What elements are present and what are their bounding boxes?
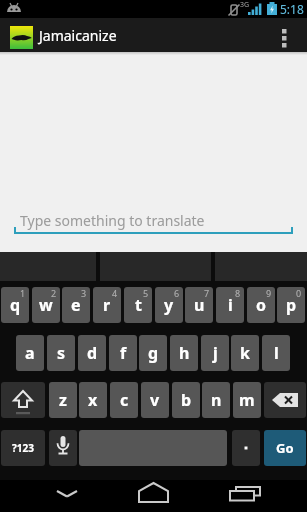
staticText: x	[88, 389, 98, 411]
button[interactable]: p	[277, 287, 305, 323]
staticText: v	[150, 389, 160, 411]
staticText: g	[148, 342, 159, 364]
button[interactable]: n	[202, 382, 230, 418]
staticText: a	[25, 342, 35, 364]
staticText: 3G	[240, 0, 250, 10]
staticText: 6	[174, 287, 180, 299]
button[interactable]: i	[216, 287, 244, 323]
button[interactable]: Go	[264, 430, 306, 466]
button[interactable]: e	[62, 287, 90, 323]
staticText: o	[256, 294, 267, 316]
staticText: j	[213, 342, 218, 364]
staticText: ?123	[12, 441, 34, 455]
button[interactable]: w	[32, 287, 60, 323]
button[interactable]: r	[93, 287, 121, 323]
staticText: 0	[296, 287, 302, 299]
staticText: d	[87, 342, 98, 364]
staticText: k	[240, 342, 250, 364]
button[interactable]: a	[16, 335, 44, 371]
button[interactable]: f	[109, 335, 137, 371]
staticText: 3	[81, 287, 87, 299]
staticText: w	[39, 294, 53, 316]
button[interactable]	[264, 382, 306, 418]
button[interactable]	[222, 480, 268, 512]
button[interactable]	[44, 480, 90, 512]
button[interactable]	[232, 430, 260, 466]
staticText: 7	[204, 287, 210, 299]
button[interactable]: j	[201, 335, 229, 371]
staticText: i	[228, 294, 233, 316]
button[interactable]: k	[231, 335, 259, 371]
button[interactable]: h	[170, 335, 198, 371]
button[interactable]: c	[110, 382, 138, 418]
button[interactable]: o	[247, 287, 275, 323]
staticText: h	[179, 342, 190, 364]
staticText: m	[239, 389, 255, 411]
button[interactable]: y	[155, 287, 183, 323]
button[interactable]	[272, 18, 307, 52]
button[interactable]: g	[139, 335, 167, 371]
staticText: 1	[20, 287, 26, 299]
staticText: y	[164, 294, 174, 316]
button[interactable]	[131, 480, 177, 512]
staticText: 5:18	[280, 1, 304, 17]
button[interactable]: Type something to translate	[14, 202, 293, 238]
button[interactable]: d	[78, 335, 106, 371]
staticText: 9	[266, 287, 272, 299]
staticText: Jamaicanize	[39, 26, 117, 45]
staticText: b	[181, 389, 192, 411]
button[interactable]: b	[172, 382, 200, 418]
staticText: l	[274, 342, 279, 364]
staticText: 4	[112, 287, 118, 299]
button[interactable]: x	[79, 382, 107, 418]
staticText: 8	[235, 287, 241, 299]
button[interactable]: s	[47, 335, 75, 371]
button[interactable]	[1, 382, 45, 418]
staticText: e	[71, 294, 81, 316]
staticText: Go	[276, 439, 294, 457]
staticText: t	[135, 294, 142, 316]
button[interactable]: l	[262, 335, 290, 371]
staticText: Type something to translate	[20, 211, 205, 230]
staticText: 2	[51, 287, 57, 299]
button[interactable]: t	[124, 287, 152, 323]
staticText: s	[57, 342, 66, 364]
button[interactable]: u	[185, 287, 213, 323]
staticText: r	[103, 294, 111, 316]
button[interactable]	[49, 430, 77, 466]
staticText: z	[59, 389, 67, 411]
staticText: c	[120, 389, 129, 411]
staticText: p	[286, 294, 297, 316]
button[interactable]: q	[1, 287, 29, 323]
staticText: u	[194, 294, 205, 316]
staticText: n	[211, 389, 222, 411]
button[interactable]: v	[141, 382, 169, 418]
button[interactable]: z	[49, 382, 77, 418]
staticText: 5	[143, 287, 149, 299]
staticText: f	[120, 342, 127, 364]
staticText: q	[10, 294, 21, 316]
button[interactable]: m	[233, 382, 261, 418]
button[interactable]: ?123	[1, 430, 45, 466]
